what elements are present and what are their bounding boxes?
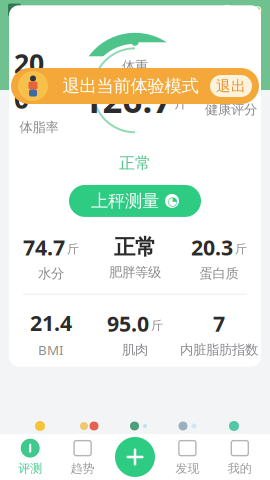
staticText: 退出当前体验模式 bbox=[62, 75, 198, 97]
staticText: % bbox=[53, 72, 64, 89]
staticText: 正常 bbox=[119, 153, 151, 173]
staticText: BMI bbox=[38, 341, 64, 359]
staticText: 我的 bbox=[228, 461, 252, 476]
staticText: 体重 bbox=[122, 58, 148, 74]
staticText: 评测 bbox=[18, 461, 42, 476]
staticText: 上秤测量 bbox=[91, 190, 159, 212]
staticText: 内脏脂肪指数 bbox=[180, 342, 258, 358]
staticText: ▼ bbox=[200, 3, 209, 17]
staticText: 正常 bbox=[114, 234, 156, 260]
staticText: 9:19 bbox=[234, 1, 262, 19]
staticText: 蛋白质 bbox=[199, 265, 238, 282]
button[interactable]: 我的 bbox=[214, 438, 266, 476]
button[interactable]: 评测 bbox=[4, 438, 56, 476]
staticText: 斤 bbox=[151, 318, 163, 333]
staticText: 72 bbox=[208, 63, 238, 98]
staticText: 126.7 bbox=[82, 76, 172, 122]
staticText: 74.7 bbox=[23, 233, 65, 261]
staticText: 体脂率 bbox=[19, 119, 58, 135]
staticText: 分 bbox=[240, 72, 253, 89]
staticText: 肥胖等级 bbox=[109, 264, 161, 281]
staticText: 斤 bbox=[67, 242, 79, 256]
staticText: 20.0 bbox=[14, 45, 51, 116]
button[interactable]: 新增 bbox=[115, 437, 155, 477]
staticText: 退出 bbox=[216, 77, 246, 95]
staticText: 斤 bbox=[174, 95, 187, 112]
staticText: 水分 bbox=[38, 265, 64, 282]
button[interactable]: 趋势 bbox=[56, 438, 109, 476]
staticText: 21.4 bbox=[30, 309, 72, 337]
staticText: 7 bbox=[213, 309, 225, 338]
button[interactable]: 退出 bbox=[210, 75, 252, 97]
staticText: ▯ bbox=[213, 3, 220, 17]
staticText: 趋势 bbox=[71, 461, 95, 476]
staticText: 95.0 bbox=[107, 309, 149, 338]
staticText: 肌肉 bbox=[122, 342, 148, 358]
button[interactable]: 上秤测量 bbox=[69, 185, 201, 217]
staticText: ◔ bbox=[167, 194, 177, 208]
staticText: 发现 bbox=[175, 461, 199, 476]
staticText: 20.3 bbox=[191, 233, 233, 261]
staticText: 健康评分 bbox=[205, 101, 257, 118]
button[interactable]: 发现 bbox=[161, 438, 214, 476]
staticText: 斤 bbox=[235, 242, 247, 256]
staticText: 知小二（体验帐号） bbox=[51, 19, 170, 61]
